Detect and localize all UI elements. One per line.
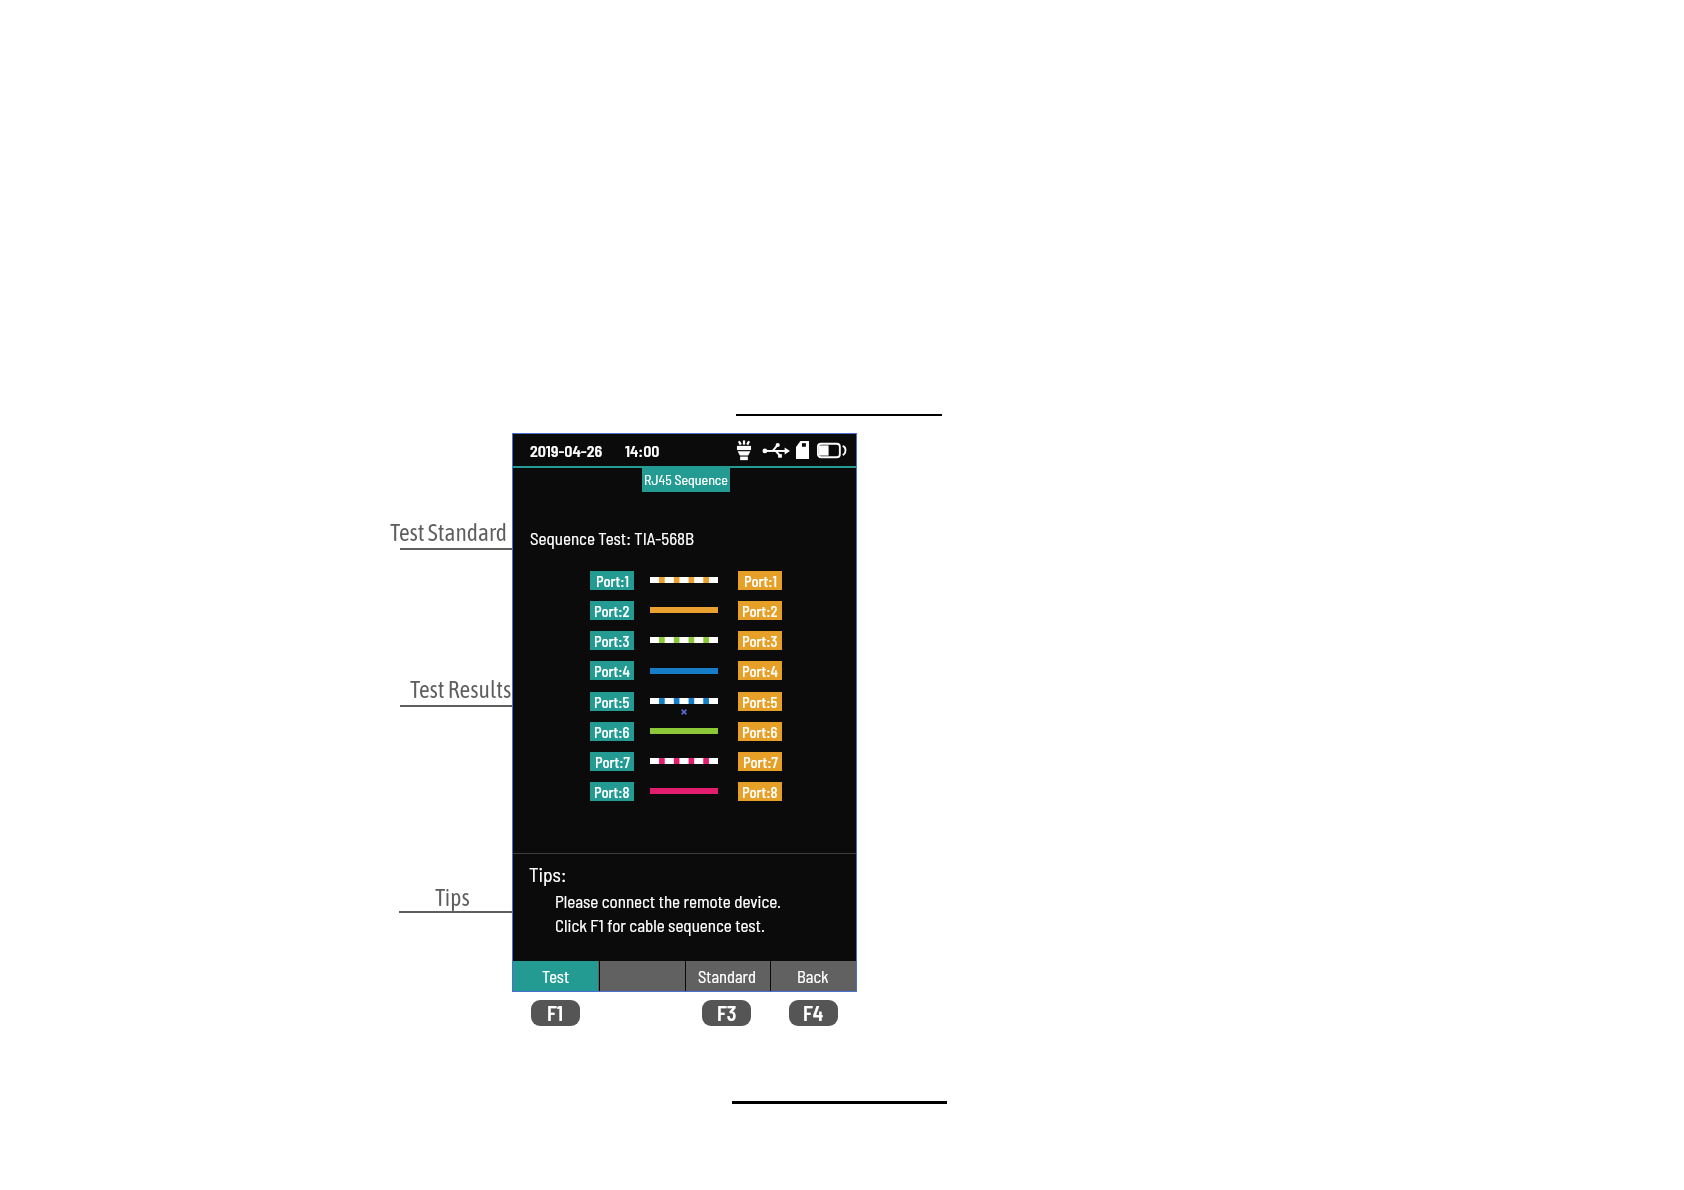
staticText: Port:4 <box>594 662 630 679</box>
staticText: Back <box>797 966 829 986</box>
staticText: Port:8 <box>742 783 778 800</box>
other: USB connected <box>763 442 790 458</box>
button[interactable]: Test <box>513 961 598 991</box>
staticText: 2019-04-26 <box>530 441 603 460</box>
staticText: Port:2 <box>742 602 778 619</box>
staticText: F1 <box>547 1001 564 1025</box>
button[interactable]: Port:8 <box>738 782 782 801</box>
staticText: Port:1 <box>744 572 777 589</box>
button[interactable]: Port:2 <box>590 601 634 620</box>
button[interactable]: Port:1 <box>738 571 782 590</box>
staticText: Port:8 <box>594 783 630 800</box>
button[interactable]: Port:5 <box>590 692 634 711</box>
button[interactable]: Function key F4 <box>789 1000 838 1026</box>
button[interactable]: Port:3 <box>738 631 782 650</box>
button[interactable]: Function key F3 <box>702 1000 751 1026</box>
button[interactable]: Port:6 <box>590 722 634 741</box>
staticText: Standard <box>698 966 756 986</box>
staticText: Port:5 <box>742 693 778 710</box>
other: Battery <box>817 442 846 459</box>
other: SD card <box>796 441 809 459</box>
button[interactable]: Port:1 <box>590 571 634 590</box>
staticText: Tips: <box>529 862 567 885</box>
button[interactable]: Port:3 <box>590 631 634 650</box>
staticText: 14:00 <box>625 441 660 460</box>
staticText: Port:7 <box>595 753 630 770</box>
button[interactable]: Port:4 <box>590 661 634 680</box>
staticText: F4 <box>803 1001 824 1025</box>
button[interactable]: Port:4 <box>738 661 782 680</box>
button[interactable]: Back <box>770 961 856 991</box>
staticText: Port:7 <box>743 753 778 770</box>
staticText: Test Results <box>410 676 512 703</box>
button[interactable]: Port:7 <box>738 752 782 771</box>
staticText: Test <box>542 966 570 986</box>
button[interactable]: Port:8 <box>590 782 634 801</box>
staticText: Click F1 for cable sequence test. <box>555 915 765 935</box>
button[interactable] <box>598 961 684 991</box>
button[interactable]: Port:7 <box>590 752 634 771</box>
button[interactable]: RJ45 Sequence <box>642 466 730 492</box>
staticText: Port:5 <box>594 693 630 710</box>
button[interactable]: Port:6 <box>738 722 782 741</box>
button[interactable]: Function key F1 <box>531 1000 580 1026</box>
button[interactable]: Port:2 <box>738 601 782 620</box>
button[interactable]: Port:5 <box>738 692 782 711</box>
staticText: Tips <box>435 884 470 911</box>
button[interactable]: Standard <box>684 961 770 991</box>
staticText: Port:4 <box>742 662 778 679</box>
staticText: Port:6 <box>594 723 630 740</box>
staticText: Port:6 <box>742 723 778 740</box>
staticText: Port:3 <box>594 632 630 649</box>
staticText: Please connect the remote device. <box>555 891 781 911</box>
staticText: RJ45 Sequence <box>644 471 728 488</box>
staticText: Port:1 <box>596 572 629 589</box>
other: Flashlight <box>736 440 752 461</box>
staticText: Port:3 <box>742 632 778 649</box>
staticText: Test Standard <box>390 519 507 546</box>
staticText: Port:2 <box>594 602 630 619</box>
staticText: F3 <box>717 1001 737 1025</box>
staticText: Sequence Test: TIA-568B <box>530 528 695 548</box>
